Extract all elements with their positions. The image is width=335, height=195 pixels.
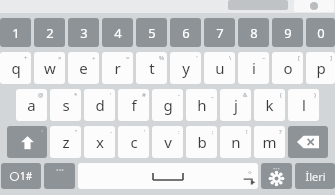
staticText: u	[215, 58, 225, 78]
staticText: ?	[279, 128, 282, 136]
button[interactable]: a	[16, 89, 47, 121]
button[interactable]: m	[254, 126, 285, 158]
staticText: "	[75, 128, 78, 136]
staticText: [	[298, 54, 300, 62]
staticText: m	[262, 132, 277, 152]
button[interactable]: w	[34, 52, 65, 84]
staticText: (	[280, 91, 282, 99]
staticText: ]	[330, 54, 332, 62]
staticText: t	[149, 58, 155, 78]
button[interactable]: x	[84, 126, 115, 158]
staticText: w	[44, 58, 56, 78]
staticText: 8	[250, 24, 258, 42]
staticText: İleri	[305, 169, 326, 184]
staticText: v	[164, 132, 172, 152]
staticText: 1	[12, 24, 20, 42]
button[interactable]: 5	[136, 18, 167, 47]
button[interactable]: 3	[68, 18, 99, 47]
button[interactable]: q	[0, 52, 31, 84]
button[interactable]: e	[68, 52, 99, 84]
staticText: ‹›	[248, 168, 252, 176]
staticText: q	[11, 58, 21, 78]
staticText: e	[79, 58, 88, 78]
button[interactable]: Space	[78, 163, 258, 189]
staticText: )	[314, 91, 316, 99]
staticText: &	[243, 91, 248, 99]
button[interactable]: l	[288, 89, 319, 121]
staticText: •••	[56, 166, 64, 176]
button[interactable]: Backspace	[288, 126, 328, 158]
staticText: +	[24, 54, 28, 62]
button[interactable]: 8	[238, 18, 269, 47]
staticText: '	[110, 91, 112, 99]
button[interactable]: İleri	[295, 163, 335, 189]
staticText: n	[231, 132, 241, 152]
button[interactable]: r	[102, 52, 133, 84]
button[interactable]: t	[136, 52, 167, 84]
staticText: °	[41, 128, 44, 136]
staticText: ′	[196, 54, 198, 62]
button[interactable]: b	[186, 126, 217, 158]
staticText: 9	[284, 24, 292, 42]
staticText: \	[229, 54, 232, 62]
staticText: ÷	[92, 54, 96, 62]
staticText: s	[62, 95, 70, 115]
button[interactable]: 0	[306, 18, 335, 47]
button[interactable]: f	[118, 89, 149, 121]
button[interactable]: k	[254, 89, 285, 121]
button[interactable]: More options	[44, 163, 75, 189]
button[interactable]: v	[152, 126, 183, 158]
staticText: r	[114, 58, 121, 78]
button[interactable]: 2	[34, 18, 65, 47]
staticText: !	[246, 128, 248, 136]
staticText: 1#	[20, 169, 33, 183]
staticText: 7	[216, 24, 224, 42]
staticText: y	[182, 58, 190, 78]
button[interactable]: 7	[204, 18, 235, 47]
staticText: a	[27, 95, 36, 115]
button[interactable]: d	[84, 89, 115, 121]
staticText: 0	[317, 24, 325, 42]
staticText: h	[197, 95, 207, 115]
staticText: 4	[114, 24, 122, 42]
staticText: l	[302, 95, 306, 115]
staticText: ×	[58, 54, 62, 62]
staticText: =	[126, 54, 130, 62]
staticText: j	[234, 95, 238, 115]
staticText: x	[96, 132, 104, 152]
staticText: b	[197, 132, 207, 152]
staticText: •••	[273, 165, 280, 173]
staticText: i	[252, 58, 256, 78]
staticText: p	[316, 58, 326, 78]
staticText: '	[144, 128, 146, 136]
button[interactable]: g	[152, 89, 183, 121]
button[interactable]: i	[238, 52, 269, 84]
button[interactable]: n	[220, 126, 251, 158]
button[interactable]: Settings	[261, 163, 292, 189]
button[interactable]: u	[204, 52, 235, 84]
staticText: 6	[182, 24, 190, 42]
button[interactable]: s	[50, 89, 81, 121]
staticText: o	[283, 58, 293, 78]
button[interactable]: 9	[272, 18, 303, 47]
button[interactable]: o	[272, 52, 303, 84]
staticText: _	[211, 91, 214, 99]
button[interactable]: 1	[0, 18, 31, 47]
button[interactable]: Symbols and emoji	[1, 163, 41, 189]
button[interactable]: 6	[170, 18, 201, 47]
button[interactable]: z	[50, 126, 81, 158]
button[interactable]: y	[170, 52, 201, 84]
button[interactable]: c	[118, 126, 149, 158]
button[interactable]: Shift	[7, 126, 47, 158]
button[interactable]: j	[220, 89, 251, 121]
staticText: ~	[262, 54, 266, 62]
button[interactable]: p	[306, 52, 335, 84]
staticText: -	[178, 91, 180, 99]
button[interactable]: h	[186, 89, 217, 121]
staticText: ;	[212, 128, 214, 136]
button[interactable]: 4	[102, 18, 133, 47]
staticText: c	[130, 132, 138, 152]
staticText: 5	[148, 24, 156, 42]
staticText: -	[110, 128, 112, 136]
staticText: g	[163, 95, 173, 115]
